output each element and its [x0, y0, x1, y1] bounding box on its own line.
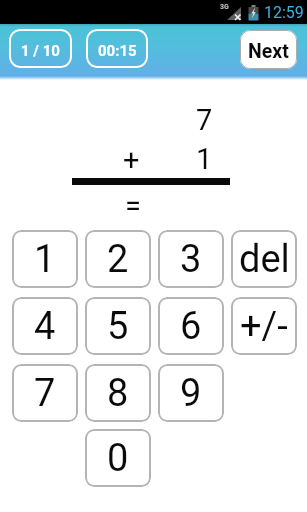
staticText: 12:59 [264, 3, 304, 22]
staticText: 5 [107, 304, 129, 349]
staticText: 4 [34, 304, 56, 349]
button[interactable]: 8 [85, 364, 151, 422]
button[interactable]: Next [240, 30, 297, 69]
button[interactable]: 5 [85, 297, 151, 355]
staticText: 1 [34, 237, 56, 282]
staticText: 00:15 [98, 42, 137, 60]
button[interactable]: del [231, 230, 297, 288]
staticText: 7 [34, 371, 56, 416]
button[interactable]: 3 [158, 230, 224, 288]
button[interactable]: 9 [158, 364, 224, 422]
button[interactable]: 2 [85, 230, 151, 288]
button[interactable]: 00:15 [86, 29, 148, 68]
button[interactable]: 0 [85, 429, 151, 487]
staticText: +/- [240, 304, 288, 349]
staticText: Next [248, 40, 289, 63]
staticText: 3 [180, 237, 202, 282]
staticText: + [123, 143, 140, 177]
staticText: 6 [180, 304, 202, 349]
button[interactable]: 6 [158, 297, 224, 355]
button[interactable]: +/- [231, 297, 297, 355]
staticText: 3G [220, 3, 229, 11]
staticText: 7 [196, 103, 213, 137]
staticText: 9 [180, 371, 202, 416]
staticText: 1 [196, 142, 213, 176]
button[interactable]: 1 / 10 [9, 29, 72, 68]
staticText: 2 [107, 237, 129, 282]
button[interactable]: 7 [12, 364, 78, 422]
staticText: 1 / 10 [21, 42, 60, 60]
staticText: = [125, 189, 141, 223]
staticText: 8 [107, 371, 129, 416]
button[interactable]: 4 [12, 297, 78, 355]
button[interactable]: 1 [12, 230, 78, 288]
staticText: del [239, 237, 290, 282]
staticText: 0 [107, 436, 129, 481]
